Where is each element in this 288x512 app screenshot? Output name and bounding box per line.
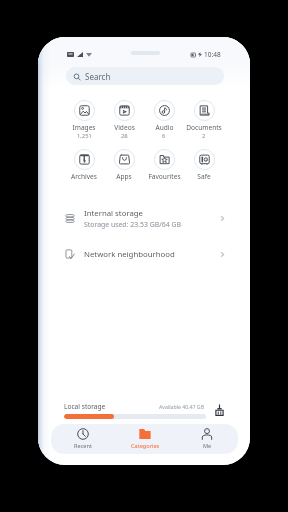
staticText: Safe — [197, 172, 211, 181]
staticText: Local storage — [64, 402, 106, 411]
staticText: Documents — [186, 123, 222, 132]
button[interactable]: Images — [64, 100, 104, 140]
button[interactable]: Archives — [64, 149, 104, 181]
staticText: 28 — [121, 132, 128, 140]
button[interactable]: Safe — [184, 149, 224, 181]
staticText: 1,251 — [77, 132, 92, 140]
staticText: Network neighbourhood — [84, 249, 175, 260]
button[interactable]: Favourites — [144, 149, 184, 181]
button[interactable]: Videos — [104, 100, 144, 140]
staticText: 10:48 — [204, 50, 221, 59]
staticText: Me — [203, 442, 212, 450]
button[interactable]: Clean up — [212, 403, 226, 417]
staticText: 2 — [202, 132, 206, 140]
staticText: Internal storage — [84, 208, 144, 219]
staticText: Storage used: 23.53 GB/64 GB — [84, 220, 181, 229]
staticText: Archives — [71, 172, 97, 181]
button[interactable]: Recent — [51, 424, 114, 454]
button[interactable]: Me — [176, 424, 238, 454]
staticText: Search — [85, 71, 111, 82]
staticText: 6 — [162, 132, 166, 140]
button[interactable]: Audio — [144, 100, 184, 140]
staticText: Apps — [116, 172, 132, 181]
staticText: Available 40.47 GB — [159, 403, 205, 410]
button[interactable]: Search — [66, 67, 224, 85]
button[interactable]: Internal storage — [38, 203, 250, 233]
button[interactable]: Apps — [104, 149, 144, 181]
staticText: Categories — [131, 442, 160, 450]
button[interactable]: Network neighbourhood — [38, 239, 250, 269]
staticText: Recent — [74, 442, 92, 450]
button[interactable]: Categories — [114, 424, 176, 454]
staticText: Videos — [114, 123, 135, 132]
staticText: Images — [72, 123, 96, 132]
staticText: Audio — [155, 123, 174, 132]
button[interactable]: Documents — [184, 100, 224, 140]
staticText: Favourites — [148, 172, 181, 181]
